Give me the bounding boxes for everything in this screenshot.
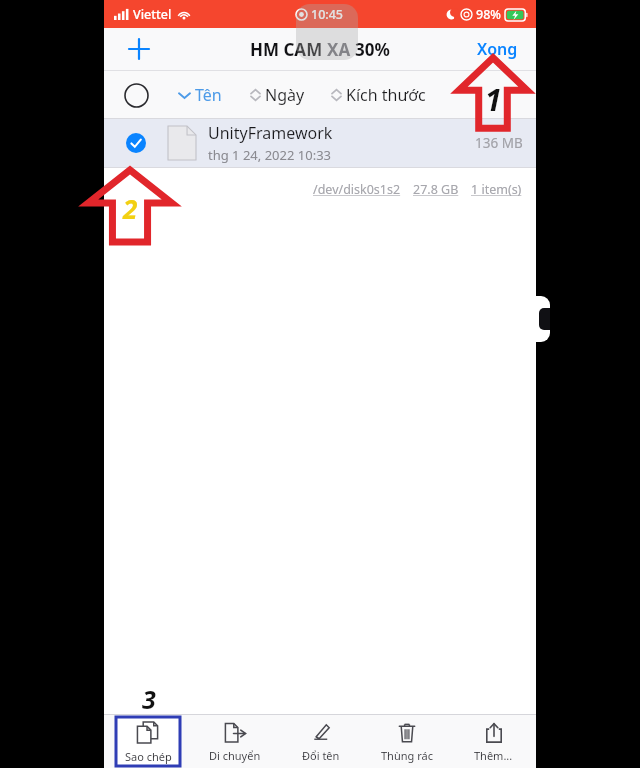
staticText: Thùng rác bbox=[381, 748, 433, 763]
staticText: Thêm... bbox=[474, 748, 513, 763]
button[interactable]: Di chuyển bbox=[191, 715, 278, 768]
button[interactable]: Đổi tên bbox=[278, 715, 364, 768]
staticText: 3 bbox=[142, 682, 156, 716]
button[interactable]: Xong bbox=[473, 32, 522, 66]
button[interactable]: Select all bbox=[116, 75, 156, 115]
button[interactable]: Tên bbox=[177, 78, 224, 112]
button[interactable]: Add bbox=[122, 32, 156, 66]
staticText: 30% bbox=[355, 38, 390, 61]
staticText: 1 item(s) bbox=[471, 181, 522, 198]
staticText: Ngày bbox=[265, 84, 305, 106]
staticText: Xong bbox=[477, 38, 518, 60]
staticText: UnityFramework bbox=[208, 122, 333, 144]
button[interactable]: Thùng rác bbox=[364, 715, 450, 768]
staticText: XA bbox=[327, 38, 355, 61]
button[interactable]: UnityFramework bbox=[104, 119, 536, 167]
button[interactable]: Kích thước bbox=[330, 78, 428, 112]
staticText: 10:45 bbox=[311, 6, 344, 23]
staticText: Tên bbox=[195, 84, 222, 106]
staticText: 136 MB bbox=[475, 134, 523, 152]
staticText: Đổi tên bbox=[302, 748, 340, 763]
staticText: HM CAM bbox=[250, 38, 327, 61]
staticText: /dev/disk0s1s2 bbox=[313, 181, 401, 198]
staticText: Di chuyển bbox=[209, 748, 261, 763]
staticText: 98% bbox=[476, 6, 501, 23]
staticText: 27.8 GB bbox=[413, 181, 459, 198]
staticText: 2 bbox=[123, 191, 138, 226]
staticText: thg 1 24, 2022 10:33 bbox=[208, 146, 332, 164]
staticText: Kích thước bbox=[346, 84, 426, 106]
staticText: 1 bbox=[485, 79, 502, 120]
staticText: Sao chép bbox=[125, 749, 172, 764]
button[interactable]: Sao chép bbox=[104, 715, 191, 768]
button[interactable]: Ngày bbox=[249, 78, 307, 112]
button[interactable]: Thêm... bbox=[450, 715, 536, 768]
staticText: Viettel bbox=[133, 6, 172, 23]
